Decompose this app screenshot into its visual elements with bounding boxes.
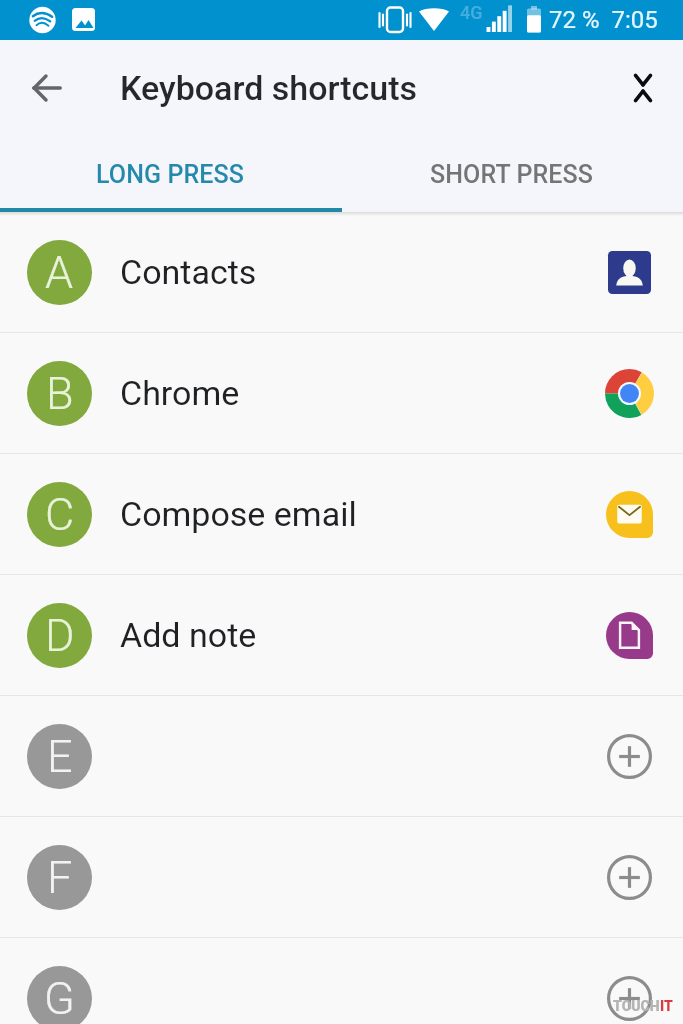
staticText: 4G: [460, 2, 483, 23]
button[interactable]: Collapse: [613, 58, 673, 118]
staticText: TOUCH: [613, 998, 660, 1014]
staticText: F: [47, 851, 73, 904]
button[interactable]: Back: [17, 58, 77, 118]
button[interactable]: A: [0, 212, 683, 332]
staticText: LONG PRESS: [96, 160, 245, 189]
staticText: G: [44, 972, 75, 1024]
staticText: A: [45, 246, 74, 299]
button[interactable]: SHORT PRESS: [341, 136, 683, 212]
staticText: 72 % 7:05: [549, 6, 658, 34]
staticText: Contacts: [120, 252, 257, 292]
button[interactable]: E: [0, 696, 683, 816]
staticText: IT: [660, 998, 673, 1014]
staticText: SHORT PRESS: [430, 160, 594, 189]
staticText: Compose email: [120, 494, 357, 534]
button[interactable]: B: [0, 333, 683, 453]
button[interactable]: G: [0, 938, 683, 1024]
staticText: E: [47, 730, 73, 783]
staticText: D: [45, 609, 75, 662]
staticText: Chrome: [120, 373, 240, 413]
staticText: Add note: [120, 615, 257, 655]
staticText: Keyboard shortcuts: [120, 68, 418, 108]
button[interactable]: C: [0, 454, 683, 574]
button[interactable]: F: [0, 817, 683, 937]
staticText: B: [46, 367, 74, 420]
button[interactable]: D: [0, 575, 683, 695]
staticText: C: [45, 488, 75, 541]
button[interactable]: LONG PRESS: [0, 136, 341, 212]
